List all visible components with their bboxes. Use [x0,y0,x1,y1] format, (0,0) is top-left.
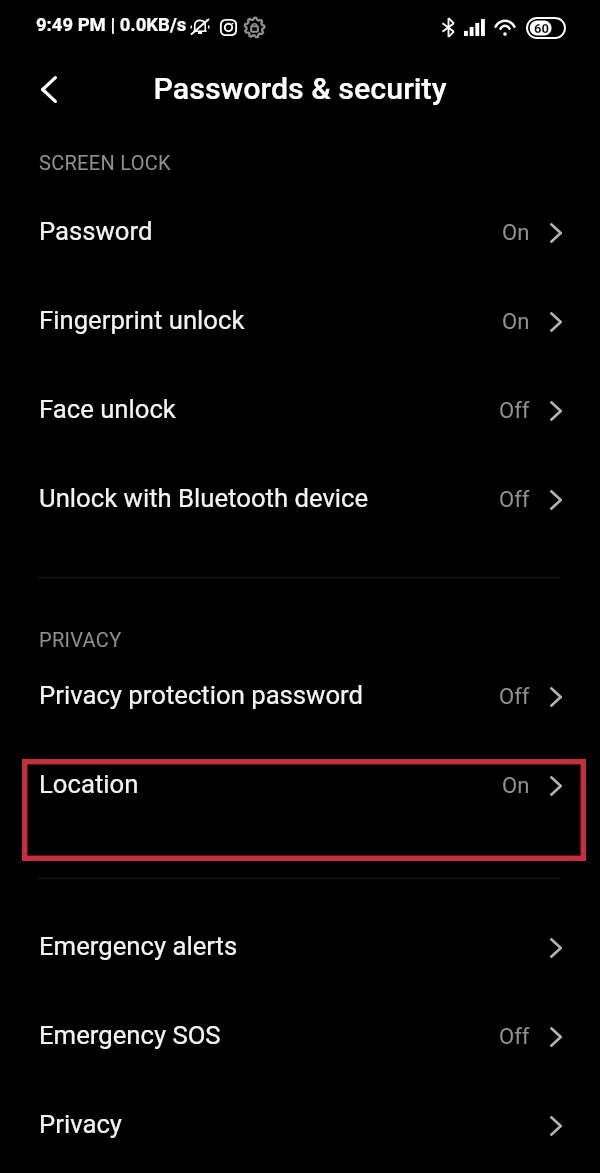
staticText: Emergency alerts [39,931,238,961]
staticText: Privacy protection password [39,680,364,710]
staticText: Emergency SOS [39,1020,221,1050]
staticText: On [502,220,530,246]
staticText: Unlock with Bluetooth device [39,483,369,513]
button[interactable]: Emergency alerts [0,901,600,990]
button[interactable]: Back [23,61,75,117]
button[interactable]: Location [0,739,600,828]
staticText: Location [39,769,139,799]
staticText: Off [499,398,530,424]
staticText: Off [499,487,530,513]
staticText: Face unlock [39,394,176,424]
staticText: PRIVACY [39,628,122,651]
staticText: SCREEN LOCK [39,151,171,174]
staticText: On [502,309,530,335]
staticText: Passwords & security [0,71,600,107]
staticText: Privacy [39,1109,122,1139]
staticText: On [502,773,530,799]
staticText: 9:49 PM | 0.0KB/s [36,14,187,36]
staticText: Password [39,216,153,246]
button[interactable]: Face unlock [0,364,600,453]
button[interactable]: Password [0,186,600,275]
button[interactable]: Unlock with Bluetooth device [0,453,600,542]
staticText: Off [499,684,530,710]
button[interactable]: Privacy protection password [0,650,600,739]
staticText: 60 [534,21,549,36]
button[interactable]: Fingerprint unlock [0,275,600,364]
button[interactable]: Privacy [0,1079,600,1168]
staticText: Fingerprint unlock [39,305,245,335]
staticText: Off [499,1024,530,1050]
button[interactable]: Emergency SOS [0,990,600,1079]
